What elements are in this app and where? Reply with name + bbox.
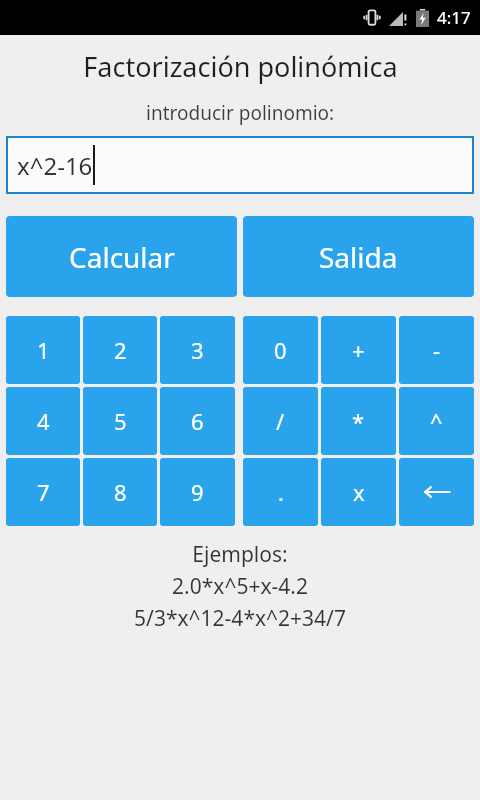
button[interactable]: Digit 6 (160, 387, 235, 455)
button[interactable]: Calcular (6, 216, 237, 297)
staticText: Ejemplos: (192, 540, 288, 569)
staticText: Calcular (69, 238, 175, 276)
staticText: * (352, 406, 365, 436)
button[interactable]: Salida (243, 216, 474, 297)
staticText: 8 (114, 477, 127, 507)
staticText: Factorización polinómica (83, 48, 398, 85)
button[interactable]: Plus (321, 316, 396, 384)
staticText: 4 (37, 406, 50, 436)
staticText: Salida (319, 238, 398, 276)
button[interactable]: Digit 3 (160, 316, 235, 384)
button[interactable]: Digit 5 (83, 387, 157, 455)
staticText: 1 (37, 335, 50, 365)
button[interactable]: Power (399, 387, 474, 455)
button[interactable]: Digit 7 (6, 458, 80, 526)
staticText: . (278, 477, 284, 507)
staticText: 0 (274, 335, 287, 365)
staticText: 2.0*x^5+x-4.2 (172, 572, 308, 601)
button[interactable]: Digit 0 (243, 316, 318, 384)
staticText: 9 (191, 477, 204, 507)
button[interactable]: Digit 4 (6, 387, 80, 455)
button[interactable]: Minus (399, 316, 474, 384)
staticText: introducir polinomio: (146, 100, 335, 126)
button[interactable]: Backspace (399, 458, 474, 526)
staticText: 3 (191, 335, 204, 365)
staticText: 5 (114, 406, 127, 436)
button[interactable]: Digit 1 (6, 316, 80, 384)
staticText: 2 (114, 335, 127, 365)
button[interactable]: x^2-16 (6, 136, 474, 194)
staticText: 7 (37, 477, 50, 507)
button[interactable]: Digit 8 (83, 458, 157, 526)
button[interactable]: Decimal point (243, 458, 318, 526)
button[interactable]: Variable x (321, 458, 396, 526)
staticText: + (352, 335, 365, 365)
staticText: 4:17 (437, 6, 471, 29)
staticText: x^2-16 (17, 149, 93, 182)
staticText: ^ (430, 406, 443, 436)
button[interactable]: Digit 2 (83, 316, 157, 384)
button[interactable]: Multiply (321, 387, 396, 455)
staticText: 6 (191, 406, 204, 436)
staticText: / (276, 406, 285, 436)
staticText: x (353, 477, 365, 507)
staticText: - (433, 335, 441, 365)
button[interactable]: Divide (243, 387, 318, 455)
staticText: 5/3*x^12-4*x^2+34/7 (134, 604, 346, 633)
button[interactable]: Digit 9 (160, 458, 235, 526)
